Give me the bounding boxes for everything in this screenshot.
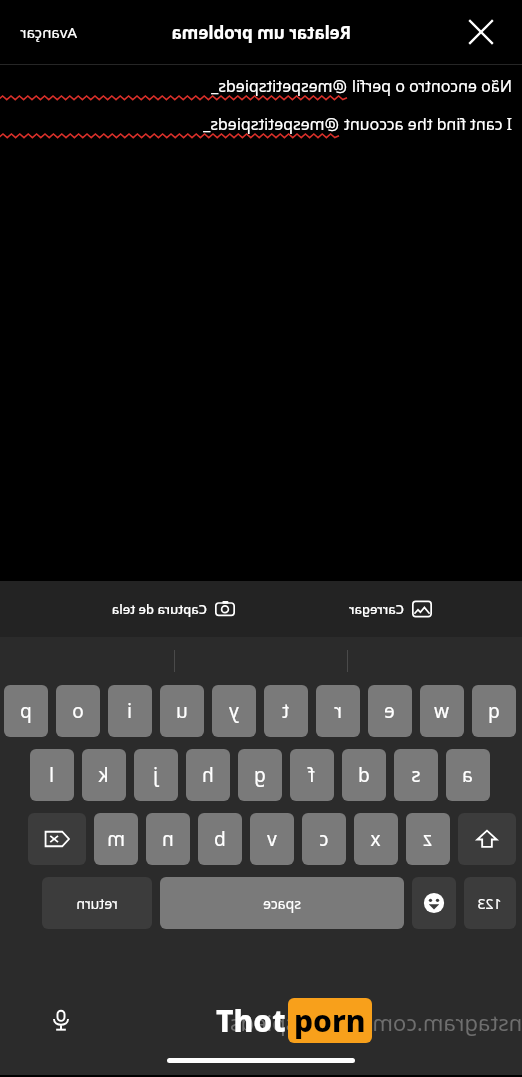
button[interactable]: l [30, 749, 74, 801]
button[interactable]: j [134, 749, 178, 801]
button[interactable]: k [82, 749, 126, 801]
button[interactable]: o [56, 685, 100, 737]
staticText: u [176, 698, 188, 724]
staticText: g [254, 762, 266, 788]
button[interactable]: s [394, 749, 438, 801]
staticText: q [488, 698, 500, 724]
staticText: f [308, 762, 315, 788]
staticText: Relatar um problema [171, 21, 351, 44]
staticText: t [282, 698, 289, 724]
button[interactable]: Captura de tela [107, 593, 239, 625]
button[interactable]: t [264, 685, 308, 737]
staticText: I cant find the account [339, 113, 512, 135]
button[interactable]: i [108, 685, 152, 737]
button[interactable]: Carregar [345, 593, 436, 625]
staticText: p [20, 698, 32, 724]
staticText: x [370, 826, 381, 852]
staticText: k [98, 762, 109, 788]
staticText: i [127, 698, 132, 724]
button[interactable]: f [290, 749, 334, 801]
staticText: j [153, 762, 158, 788]
button[interactable]: space [160, 877, 404, 929]
staticText: @mespetitspieds_ [203, 113, 339, 135]
staticText: Não encontro o perfil [347, 75, 512, 97]
button[interactable]: Não encontro o perfil [0, 65, 522, 581]
staticText: @mespetitspieds_ [211, 75, 347, 97]
staticText: space [263, 894, 301, 913]
button[interactable]: Close [458, 9, 504, 55]
staticText: instagram.com/mpetitspieds [230, 1007, 522, 1037]
staticText: z [423, 826, 432, 852]
staticText: y [229, 698, 239, 724]
button[interactable]: b [198, 813, 242, 865]
button[interactable]: c [302, 813, 346, 865]
staticText: o [72, 698, 84, 724]
staticText: Carregar [349, 600, 404, 618]
button[interactable]: d [342, 749, 386, 801]
button[interactable]: Backspace [28, 813, 86, 865]
button[interactable]: a [446, 749, 490, 801]
staticText: Thot [216, 1000, 286, 1041]
staticText: s [411, 762, 421, 788]
button[interactable]: Emoji [412, 877, 456, 929]
button[interactable]: p [4, 685, 48, 737]
staticText: Avançar [20, 22, 77, 42]
staticText: e [384, 698, 395, 724]
staticText: 123 [477, 894, 502, 913]
button[interactable]: Voice input [44, 1003, 78, 1037]
staticText: r [334, 698, 342, 724]
button[interactable]: 123 [464, 877, 516, 929]
staticText: b [214, 826, 226, 852]
button[interactable]: g [238, 749, 282, 801]
button[interactable]: e [368, 685, 412, 737]
staticText: v [267, 826, 277, 852]
button[interactable]: u [160, 685, 204, 737]
staticText: h [202, 762, 214, 788]
button[interactable]: y [212, 685, 256, 737]
button[interactable]: Shift [458, 813, 516, 865]
button[interactable]: r [316, 685, 360, 737]
button[interactable]: x [354, 813, 398, 865]
staticText: m [107, 826, 125, 852]
button[interactable]: n [146, 813, 190, 865]
button[interactable]: Avançar [14, 14, 83, 50]
staticText: l [49, 762, 54, 788]
staticText: Captura de tela [111, 600, 207, 618]
button[interactable]: h [186, 749, 230, 801]
staticText: d [358, 762, 370, 788]
staticText: porn [294, 1000, 366, 1041]
button[interactable]: q [472, 685, 516, 737]
staticText: c [319, 826, 329, 852]
button[interactable]: return [42, 877, 152, 929]
staticText: w [434, 698, 449, 724]
button[interactable]: z [406, 813, 450, 865]
staticText: a [462, 762, 473, 788]
staticText: return [76, 894, 118, 913]
staticText: n [162, 826, 174, 852]
button[interactable]: m [94, 813, 138, 865]
button[interactable]: w [420, 685, 464, 737]
button[interactable]: v [250, 813, 294, 865]
